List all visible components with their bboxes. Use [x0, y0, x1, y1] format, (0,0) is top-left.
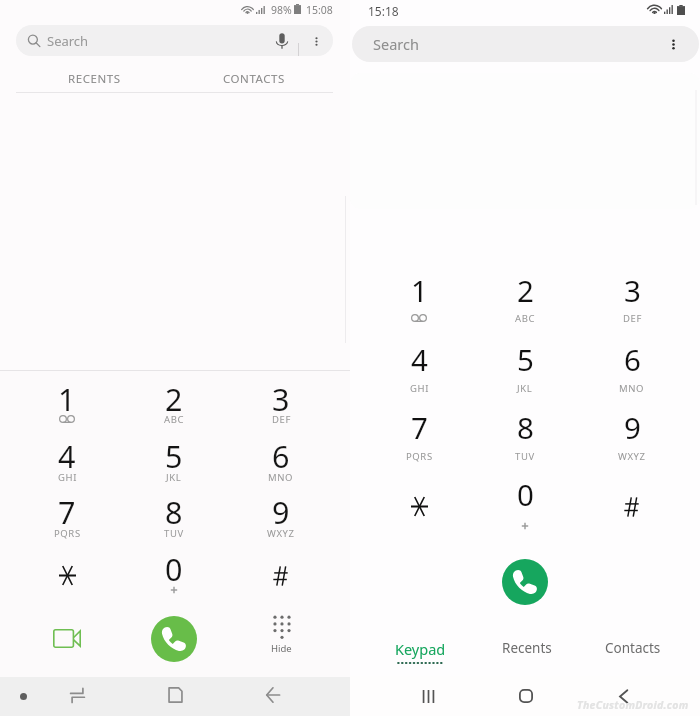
- button[interactable]: [14, 427, 120, 483]
- button[interactable]: More options: [305, 30, 327, 52]
- staticText: 2: [165, 378, 183, 420]
- staticText: ABC: [164, 413, 185, 426]
- button[interactable]: [121, 370, 227, 426]
- button[interactable]: Recent apps: [414, 682, 442, 710]
- button[interactable]: Back: [609, 682, 637, 710]
- button[interactable]: [228, 427, 334, 483]
- staticText: RECENTS: [68, 71, 121, 87]
- button[interactable]: [14, 483, 120, 539]
- button[interactable]: Search: [16, 25, 333, 56]
- staticText: Keypad: [395, 639, 446, 659]
- button[interactable]: [121, 483, 227, 539]
- button[interactable]: [228, 540, 334, 596]
- button[interactable]: Contacts: [583, 639, 683, 669]
- button[interactable]: RECENTS: [0, 66, 189, 92]
- staticText: 98%: [271, 3, 292, 17]
- button[interactable]: [366, 262, 472, 318]
- staticText: PQRS: [54, 527, 81, 540]
- staticText: 9: [272, 491, 290, 533]
- button[interactable]: [366, 399, 472, 455]
- staticText: 2: [517, 270, 534, 310]
- staticText: 7: [411, 407, 428, 447]
- staticText: JKL: [517, 382, 533, 395]
- staticText: 8: [517, 407, 534, 447]
- staticText: MNO: [619, 382, 645, 395]
- staticText: Search: [47, 32, 89, 50]
- staticText: TheCustomDroid.com: [577, 698, 689, 712]
- staticText: 4: [58, 435, 76, 477]
- staticText: Recents: [502, 639, 552, 657]
- staticText: DEF: [272, 413, 291, 426]
- button[interactable]: Call: [502, 559, 548, 605]
- staticText: GHI: [58, 471, 77, 484]
- button[interactable]: Voice search: [271, 30, 293, 52]
- staticText: 5: [165, 435, 183, 477]
- staticText: 6: [272, 435, 290, 477]
- button[interactable]: Search: [352, 26, 699, 62]
- staticText: 1: [411, 270, 428, 310]
- staticText: 3: [272, 378, 290, 420]
- button[interactable]: [579, 262, 685, 318]
- button[interactable]: Back: [259, 681, 287, 709]
- button[interactable]: Keypad: [370, 639, 470, 669]
- staticText: 1: [58, 378, 76, 420]
- button[interactable]: [472, 262, 578, 318]
- staticText: Contacts: [605, 639, 661, 657]
- button[interactable]: Video call: [40, 611, 94, 665]
- staticText: 15:08: [306, 3, 333, 17]
- staticText: WXYZ: [618, 450, 646, 463]
- staticText: 5: [517, 339, 534, 379]
- staticText: MNO: [268, 471, 294, 484]
- button[interactable]: [14, 540, 120, 596]
- staticText: GHI: [410, 382, 429, 395]
- button[interactable]: [472, 399, 578, 455]
- staticText: TUV: [164, 527, 184, 540]
- button[interactable]: Hide keypad: [257, 615, 305, 663]
- button[interactable]: [579, 331, 685, 387]
- staticText: DEF: [623, 312, 642, 325]
- button[interactable]: [228, 370, 334, 426]
- staticText: TUV: [515, 450, 535, 463]
- button[interactable]: [121, 427, 227, 483]
- button[interactable]: Recent apps: [63, 681, 91, 709]
- staticText: 9: [624, 407, 641, 447]
- staticText: 7: [58, 491, 76, 533]
- staticText: 3: [624, 270, 641, 310]
- staticText: CONTACTS: [223, 71, 285, 87]
- staticText: 15:18: [368, 3, 399, 19]
- button[interactable]: Show keyboard: [12, 685, 34, 707]
- button[interactable]: [228, 483, 334, 539]
- staticText: Search: [373, 34, 419, 54]
- staticText: ABC: [515, 312, 536, 325]
- button[interactable]: [472, 331, 578, 387]
- button[interactable]: [579, 466, 685, 522]
- button[interactable]: Home: [161, 681, 189, 709]
- button[interactable]: Recents: [477, 639, 577, 669]
- staticText: 0: [517, 474, 534, 514]
- button[interactable]: CONTACTS: [189, 66, 319, 92]
- button[interactable]: More options: [660, 31, 686, 57]
- staticText: 6: [624, 339, 641, 379]
- button[interactable]: [14, 370, 120, 426]
- staticText: PQRS: [406, 450, 433, 463]
- button[interactable]: Home: [512, 682, 540, 710]
- staticText: JKL: [166, 471, 182, 484]
- button[interactable]: [472, 466, 578, 522]
- staticText: 0: [165, 548, 183, 590]
- staticText: WXYZ: [267, 527, 295, 540]
- staticText: 8: [165, 491, 183, 533]
- staticText: Hide: [271, 642, 292, 655]
- button[interactable]: [366, 466, 472, 522]
- staticText: 4: [411, 339, 428, 379]
- button[interactable]: [579, 399, 685, 455]
- button[interactable]: [121, 540, 227, 596]
- button[interactable]: [366, 331, 472, 387]
- button[interactable]: Call: [151, 616, 197, 662]
